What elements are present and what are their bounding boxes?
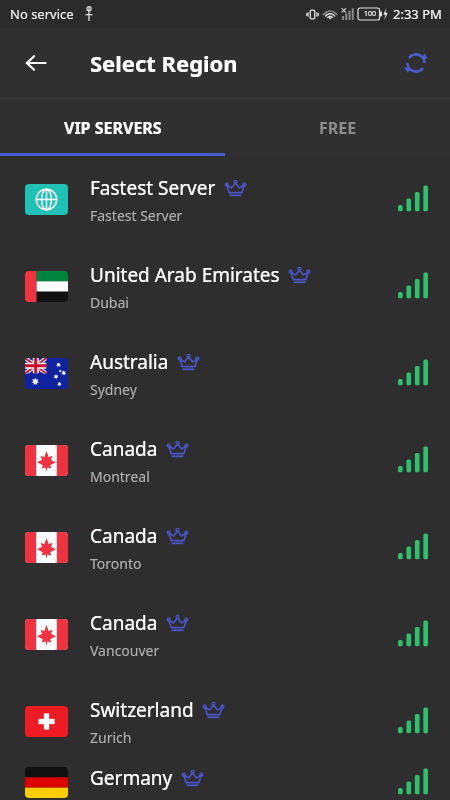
- button[interactable]: Back: [14, 41, 58, 85]
- button[interactable]: Switzerland: [0, 678, 450, 765]
- button[interactable]: Germany: [0, 765, 450, 800]
- button[interactable]: VIP SERVERS: [0, 99, 225, 156]
- staticText: Select Region: [90, 48, 238, 78]
- staticText: Australia: [90, 349, 169, 375]
- button[interactable]: Canada: [0, 417, 450, 504]
- staticText: Canada: [90, 436, 158, 462]
- staticText: Sydney: [90, 380, 137, 399]
- staticText: Fastest Server: [90, 175, 216, 201]
- button[interactable]: Refresh: [394, 41, 438, 85]
- button[interactable]: United Arab Emirates: [0, 243, 450, 330]
- staticText: United Arab Emirates: [90, 262, 280, 288]
- staticText: Montreal: [90, 467, 150, 486]
- button[interactable]: Australia: [0, 330, 450, 417]
- button[interactable]: FREE: [225, 99, 450, 156]
- button[interactable]: Canada: [0, 504, 450, 591]
- staticText: VIP SERVERS: [64, 117, 162, 139]
- button[interactable]: Canada: [0, 591, 450, 678]
- staticText: Toronto: [90, 554, 142, 573]
- staticText: Zurich: [90, 728, 132, 747]
- staticText: Canada: [90, 523, 158, 549]
- staticText: No service: [10, 5, 74, 23]
- staticText: Vancouver: [90, 641, 160, 660]
- button[interactable]: Fastest Server: [0, 156, 450, 243]
- staticText: 100: [364, 9, 377, 19]
- staticText: FREE: [319, 117, 357, 139]
- staticText: Fastest Server: [90, 206, 183, 225]
- staticText: Dubai: [90, 293, 129, 312]
- staticText: Switzerland: [90, 697, 194, 723]
- staticText: Canada: [90, 610, 158, 636]
- staticText: 2:33 PM: [393, 5, 442, 23]
- staticText: Germany: [90, 765, 173, 791]
